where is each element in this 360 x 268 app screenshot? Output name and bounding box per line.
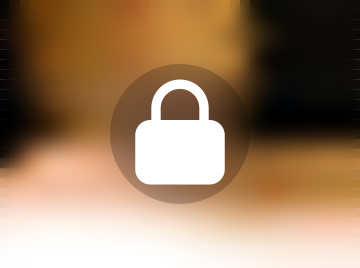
button[interactable]: Unlock xyxy=(110,64,250,204)
